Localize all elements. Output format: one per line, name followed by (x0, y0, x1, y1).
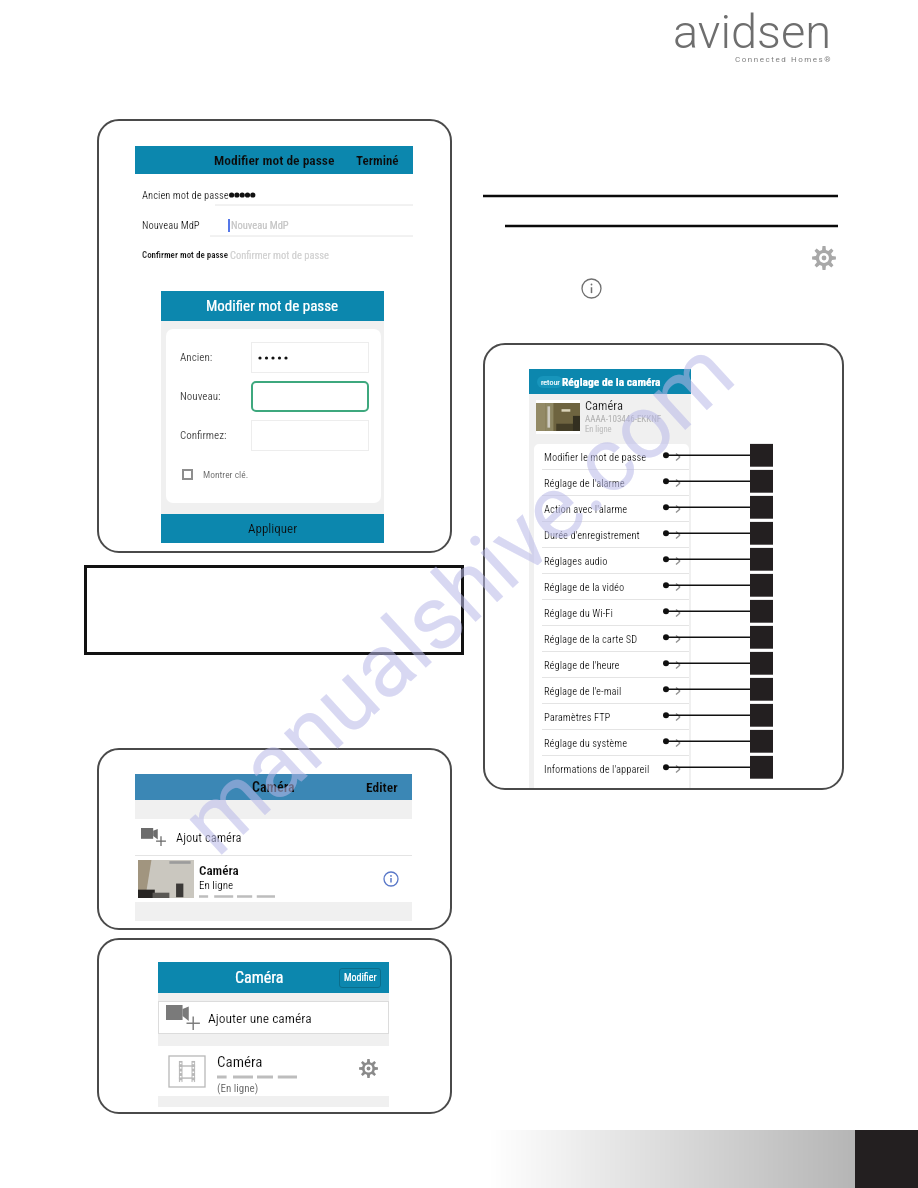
staticText: Caméra (199, 863, 239, 878)
staticText: Caméra (585, 398, 623, 413)
button[interactable]: Modifier le mot de passe (534, 444, 689, 470)
staticText: Connected Homes® (735, 55, 833, 64)
staticText: En ligne (585, 424, 612, 434)
button[interactable]: Confirmer mot de passe (142, 245, 413, 265)
staticText: manualshive.com (161, 319, 754, 875)
button[interactable]: Retour (537, 376, 563, 388)
staticText: Réglage du Wi-Fi (544, 607, 613, 619)
staticText: Réglages audio (544, 555, 608, 567)
button[interactable]: Modifier (339, 968, 381, 988)
button[interactable]: Settings (811, 245, 837, 271)
staticText: Editer (366, 779, 398, 795)
staticText: Ancien: (180, 351, 213, 364)
button[interactable]: Caméra (135, 774, 412, 800)
staticText: Caméra (252, 779, 295, 795)
staticText: Confirmez: (180, 429, 227, 442)
staticText: Réglage de l'e-mail (544, 685, 622, 697)
staticText: Durée d'enregistrement (544, 529, 640, 541)
staticText: retour (541, 378, 560, 387)
staticText: Réglage de l'heure (544, 659, 620, 671)
button[interactable]: Réglage de l'alarme (534, 470, 689, 496)
button[interactable] (251, 420, 369, 451)
staticText: Appliquer (248, 521, 298, 536)
button[interactable]: Nouveau MdP (142, 215, 413, 235)
button[interactable]: Durée d'enregistrement (534, 522, 689, 548)
staticText: Modifier le mot de passe (544, 451, 647, 463)
button[interactable]: Réglage de l'heure (534, 652, 689, 678)
button[interactable]: Montrer clé. (182, 465, 249, 483)
staticText: Modifier (344, 972, 377, 984)
staticText: Ajouter une caméra (208, 1010, 312, 1026)
staticText: Réglage de la vidéo (544, 581, 625, 593)
button[interactable]: Appliquer (161, 514, 384, 543)
button[interactable]: Action avec l'alarme (534, 496, 689, 522)
staticText: Action avec l'alarme (544, 503, 628, 515)
staticText: AAAA-103446-EKKNF (585, 414, 662, 425)
staticText: Modifier mot de passe (206, 297, 339, 315)
button[interactable]: Caméra (158, 1046, 389, 1096)
button[interactable]: Réglage de la vidéo (534, 574, 689, 600)
staticText: Caméra (217, 1053, 263, 1071)
button[interactable]: Paramètres FTP (534, 704, 689, 730)
staticText: Réglage du système (544, 737, 628, 749)
button[interactable]: Caméra (158, 962, 389, 993)
staticText: En ligne (199, 879, 234, 892)
button[interactable]: Ajout caméra (135, 819, 412, 855)
button[interactable]: Ancien mot de passe (142, 185, 413, 205)
button[interactable]: Réglage du Wi-Fi (534, 600, 689, 626)
button[interactable]: Information (580, 277, 602, 299)
staticText: Terminé (356, 153, 399, 168)
staticText: Réglage de la carte SD (544, 633, 638, 645)
button[interactable]: Réglage de l'e-mail (534, 678, 689, 704)
button[interactable]: Retour (529, 369, 691, 394)
staticText: Réglage de la caméra (562, 375, 661, 388)
button[interactable]: Modifier mot de passe (135, 146, 413, 174)
staticText: Paramètres FTP (544, 711, 611, 723)
staticText: (En ligne) (217, 1082, 259, 1095)
staticText: Montrer clé. (203, 469, 249, 480)
button[interactable] (251, 381, 369, 412)
staticText: Nouveau: (180, 390, 221, 403)
staticText: avidsen (673, 4, 832, 59)
button[interactable]: Informations de l'appareil (534, 756, 689, 782)
button[interactable]: Réglage de la carte SD (534, 626, 689, 652)
staticText: Nouveau MdP (142, 219, 200, 231)
staticText: Nouveau MdP (231, 219, 289, 231)
button[interactable]: Ajouter une caméra (158, 1001, 389, 1034)
staticText: Ajout caméra (176, 830, 242, 845)
staticText: Caméra (235, 968, 284, 987)
button[interactable]: Caméra (135, 856, 412, 902)
button[interactable]: Réglage du système (534, 730, 689, 756)
staticText: Réglage de l'alarme (544, 477, 625, 489)
staticText: Confirmer mot de passe (142, 250, 228, 261)
staticText: Modifier mot de passe (214, 152, 335, 168)
button[interactable]: Réglages audio (534, 548, 689, 574)
staticText: Ancien mot de passe (142, 189, 229, 201)
button[interactable] (251, 342, 369, 373)
staticText: Informations de l'appareil (544, 763, 650, 775)
button[interactable]: Caméra (529, 394, 691, 438)
staticText: Confirmer mot de passe (230, 249, 330, 261)
